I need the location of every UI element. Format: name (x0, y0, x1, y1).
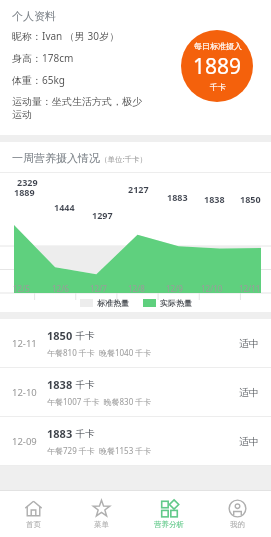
staticText: 1883 (47, 426, 73, 441)
staticText: 12-11 (12, 337, 37, 350)
button[interactable]: 我的 (203, 491, 271, 537)
staticText: 1850 (47, 328, 73, 343)
staticText: 1838 (204, 193, 225, 205)
staticText: （单位:千卡） (100, 154, 148, 164)
staticText: 12-09 (12, 435, 37, 448)
staticText: 1838 (47, 377, 73, 392)
button[interactable]: 首页 (0, 491, 67, 537)
staticText: 12/11 (239, 283, 261, 294)
button[interactable]: 每日标准摄入 (181, 30, 253, 102)
staticText: 1444 (54, 201, 75, 213)
staticText: 身高：178cm (12, 51, 74, 65)
staticText: 我的 (230, 520, 245, 529)
button[interactable]: 12-11 (0, 319, 271, 367)
staticText: 1889 (193, 52, 242, 81)
staticText: 每日标准摄入 (194, 41, 242, 51)
staticText: 午餐729 千卡 晚餐1153 千卡 (47, 445, 152, 456)
staticText: 12/7 (90, 283, 107, 294)
staticText: 标准热量 (97, 298, 129, 308)
staticText: 12-10 (12, 386, 37, 399)
staticText: 12/9 (166, 283, 183, 294)
staticText: 首页 (26, 520, 41, 529)
staticText: 12/6 (52, 283, 69, 294)
staticText: 1850 (240, 193, 261, 205)
staticText: 12/5 (13, 283, 30, 294)
staticText: 一周营养摄入情况 (12, 151, 100, 165)
staticText: 1889 (14, 186, 35, 198)
staticText: 昵称：Ivan （男 30岁） (12, 29, 119, 43)
staticText: 实际热量 (160, 298, 192, 308)
staticText: 适中 (239, 435, 259, 448)
staticText: 适中 (239, 386, 259, 399)
staticText: 12/10 (201, 283, 223, 294)
staticText: 千卡 (73, 329, 95, 342)
staticText: 千卡 (73, 378, 95, 391)
staticText: 营养分析 (154, 520, 184, 529)
button[interactable]: 12-10 (0, 368, 271, 416)
staticText: 2127 (128, 183, 149, 195)
button[interactable]: 菜单 (67, 491, 135, 537)
button[interactable]: 12-09 (0, 417, 271, 465)
staticText: 午餐810 千卡 晚餐1040 千卡 (47, 347, 152, 358)
staticText: 适中 (239, 337, 259, 350)
staticText: 2329 (17, 176, 38, 188)
button[interactable]: 营养分析 (135, 491, 203, 537)
staticText: 运动量：坐式生活方式，极少 运动 (12, 95, 162, 121)
staticText: 菜单 (94, 520, 109, 529)
staticText: 12/8 (128, 283, 145, 294)
staticText: 千卡 (73, 427, 95, 440)
staticText: 1297 (92, 209, 113, 221)
staticText: 午餐1007 千卡 晚餐830 千卡 (47, 396, 152, 407)
staticText: 1883 (167, 191, 188, 203)
staticText: 个人资料 (12, 9, 56, 23)
staticText: 体重：65kg (12, 73, 65, 87)
staticText: 千卡 (210, 82, 226, 92)
